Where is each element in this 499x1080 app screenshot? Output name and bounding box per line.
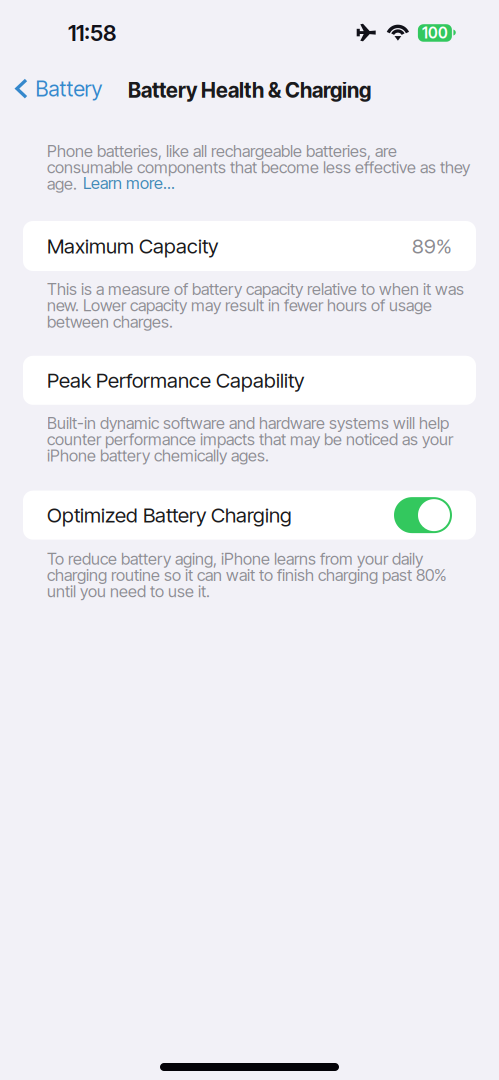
button[interactable]: Learn more... (47, 143, 175, 191)
button[interactable]: Optimized Battery Charging (394, 497, 452, 533)
staticText: This is a measure of battery capacity re… (47, 281, 464, 330)
staticText: Learn more... (83, 175, 175, 191)
staticText: 89% (412, 235, 452, 257)
staticText: Optimized Battery Charging (47, 504, 292, 526)
staticText: Maximum Capacity (47, 235, 218, 257)
button[interactable]: Maximum Capacity (23, 221, 476, 271)
button[interactable]: Battery (0, 58, 114, 110)
staticText: 11:58 (68, 21, 116, 45)
button[interactable]: Peak Performance Capability (23, 356, 476, 405)
staticText: Peak Performance Capability (47, 369, 304, 391)
staticText: Battery (35, 77, 102, 100)
button[interactable]: Optimized Battery Charging (23, 491, 476, 540)
staticText: 100 (422, 25, 448, 41)
staticText: Built-in dynamic software and hardware s… (47, 415, 453, 464)
staticText: To reduce battery aging, iPhone learns f… (47, 551, 447, 599)
staticText: Phone batteries, like all rechargeable b… (47, 143, 470, 192)
staticText: Battery Health & Charging (128, 79, 371, 101)
